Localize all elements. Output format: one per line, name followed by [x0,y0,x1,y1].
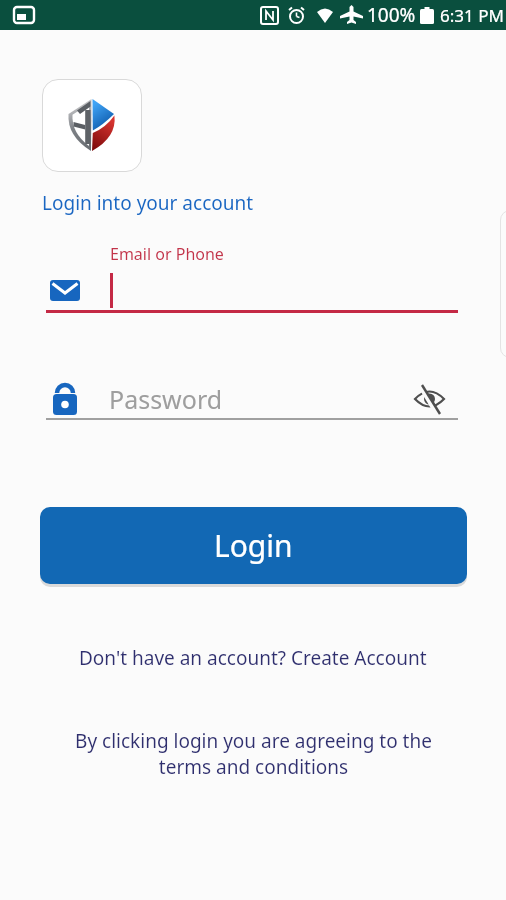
button[interactable]: Password [0,382,506,416]
button[interactable] [413,386,446,412]
button[interactable] [0,273,506,308]
staticText: Password [109,382,223,416]
staticText: Login [214,525,293,566]
staticText: 100% [367,2,416,28]
button[interactable]: Don't have an account? Create Account [79,645,427,671]
staticText: Email or Phone [110,243,224,265]
staticText: By clicking login you are agreeing to th… [75,728,432,780]
button[interactable]: Login [40,507,467,584]
staticText: Login into your account [42,190,254,216]
staticText: 6:31 PM [440,4,504,27]
